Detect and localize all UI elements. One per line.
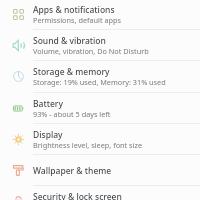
staticText: Sound & vibration — [33, 35, 106, 47]
staticText: Wallpaper & theme — [33, 165, 112, 177]
staticText: Brightness level, sleep, font size — [33, 140, 143, 150]
staticText: 93% - about 5 days left — [33, 109, 111, 119]
staticText: Volume, vibration, Do Not Disturb — [33, 46, 149, 56]
button[interactable]: Security & lock screen — [0, 186, 200, 200]
button[interactable]: Storage & memory — [0, 61, 200, 92]
staticText: Apps & notifications — [33, 4, 115, 16]
staticText: Storage & memory — [33, 66, 110, 78]
button[interactable]: Display — [0, 124, 200, 155]
staticText: Battery — [33, 98, 63, 110]
staticText: Display — [33, 129, 63, 141]
staticText: Permissions, default apps — [33, 15, 122, 25]
button[interactable]: Battery — [0, 93, 200, 124]
button[interactable]: Apps & notifications — [0, 0, 200, 30]
staticText: Storage: 19% used, Memory: 31% used — [33, 77, 166, 87]
button[interactable]: Sound & vibration — [0, 30, 200, 61]
staticText: Security & lock screen — [33, 191, 122, 200]
button[interactable]: Wallpaper & theme — [0, 155, 200, 186]
